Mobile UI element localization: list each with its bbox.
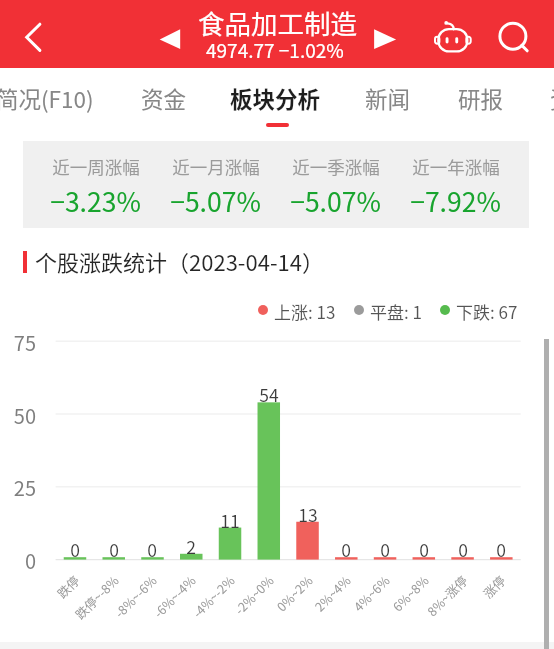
staticText: 0%~2% xyxy=(225,571,316,649)
staticText: 25 xyxy=(13,473,36,502)
button[interactable]: Search xyxy=(489,12,537,60)
staticText: 平盘: 1 xyxy=(370,299,422,321)
staticText: 个股涨跌统计（2023-04-14） xyxy=(35,245,324,277)
button[interactable]: 研报 xyxy=(440,68,521,130)
staticText: 上涨: 13 xyxy=(274,299,336,321)
staticText: −3.23% xyxy=(50,181,141,216)
button[interactable]: 资金 xyxy=(123,68,204,130)
staticText: -4%~-2% xyxy=(147,571,238,649)
button[interactable]: 下跌: 67 xyxy=(440,299,530,321)
button[interactable]: Back xyxy=(10,12,58,60)
staticText: 研报 xyxy=(458,82,504,115)
staticText: 0 xyxy=(380,537,390,562)
staticText: 食品加工制造 xyxy=(198,3,357,41)
staticText: 0 xyxy=(147,537,157,562)
staticText: 4974.77 −1.02% xyxy=(206,36,344,64)
staticText: 简况(F10) xyxy=(0,82,94,115)
staticText: -8%~-6% xyxy=(69,571,160,649)
button[interactable]: Next sector xyxy=(366,22,402,56)
button[interactable]: 个股涨跌统计（2023-04-14） xyxy=(35,245,324,277)
button[interactable]: 近一年涨幅 xyxy=(385,154,525,216)
staticText: −5.07% xyxy=(170,181,261,216)
staticText: 0 xyxy=(70,537,80,562)
staticText: 8%~涨停 xyxy=(380,571,471,649)
staticText: 2%~4% xyxy=(263,571,354,649)
staticText: -6%~-4% xyxy=(108,571,199,649)
staticText: 近一年涨幅 xyxy=(412,154,500,179)
staticText: 54 xyxy=(259,382,279,407)
staticText: 2 xyxy=(186,534,196,559)
staticText: -2%~0% xyxy=(186,571,277,649)
button[interactable]: 新闻 xyxy=(347,68,428,130)
button[interactable]: AI assistant xyxy=(428,12,476,60)
staticText: 跌停 xyxy=(0,571,83,649)
staticText: 资金 xyxy=(141,82,187,115)
button[interactable]: 资金流向 xyxy=(532,68,554,130)
staticText: 近一月涨幅 xyxy=(172,154,260,179)
staticText: 0 xyxy=(24,546,36,575)
button[interactable]: 近一周涨幅 xyxy=(25,154,165,216)
staticText: 0 xyxy=(109,537,119,562)
staticText: 板块分析 xyxy=(230,82,321,115)
staticText: 4%~6% xyxy=(302,571,393,649)
staticText: 13 xyxy=(298,502,318,527)
staticText: 75 xyxy=(13,328,36,357)
button[interactable]: 平盘: 1 xyxy=(354,299,434,321)
staticText: 近一季涨幅 xyxy=(292,154,380,179)
staticText: 近一周涨幅 xyxy=(52,154,140,179)
button[interactable]: 简况(F10) xyxy=(0,68,109,130)
staticText: −5.07% xyxy=(290,181,381,216)
button[interactable]: 上涨: 13 xyxy=(258,299,348,321)
button[interactable]: 板块分析 xyxy=(212,68,338,130)
button[interactable]: 近一季涨幅 xyxy=(265,154,405,216)
staticText: −7.92% xyxy=(410,181,501,216)
button[interactable]: Previous sector xyxy=(152,22,188,56)
staticText: 0 xyxy=(341,537,351,562)
staticText: 0 xyxy=(458,537,468,562)
staticText: 新闻 xyxy=(365,82,411,115)
staticText: 6%~8% xyxy=(341,571,432,649)
button[interactable]: 食品加工制造 xyxy=(198,3,357,41)
button[interactable]: 近一月涨幅 xyxy=(145,154,285,216)
staticText: 下跌: 67 xyxy=(456,299,518,321)
staticText: 资金流向 xyxy=(550,82,554,115)
staticText: 11 xyxy=(220,508,240,533)
staticText: 跌停~-8% xyxy=(31,571,122,649)
staticText: 0 xyxy=(496,537,506,562)
staticText: 50 xyxy=(13,401,36,430)
staticText: 0 xyxy=(419,537,429,562)
staticText: 涨停 xyxy=(418,571,509,649)
